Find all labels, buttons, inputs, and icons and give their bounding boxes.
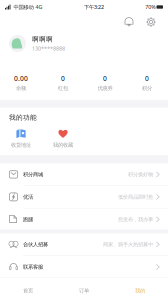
button[interactable]: 通知: [124, 17, 134, 27]
staticText: 我的收藏: [53, 142, 73, 148]
button[interactable]: 优活: [0, 186, 168, 208]
staticText: 积分换好物: [128, 171, 153, 178]
staticText: 首页: [23, 287, 33, 294]
staticText: 跑腿: [23, 216, 33, 223]
staticText: 商家、骑手火热招募中: [103, 241, 153, 248]
staticText: 130****8888: [32, 45, 65, 52]
staticText: 0: [145, 74, 149, 83]
staticText: 订单: [79, 287, 89, 294]
staticText: 我的: [135, 287, 145, 294]
staticText: 红包: [58, 85, 68, 91]
button[interactable]: 我的: [112, 277, 168, 300]
button[interactable]: 头像: [9, 35, 26, 52]
staticText: 下午3:22: [84, 3, 104, 11]
button[interactable]: 跑腿: [0, 208, 168, 230]
button[interactable]: 首页: [0, 277, 56, 300]
staticText: 合伙人招募: [23, 241, 48, 248]
staticText: 啊啊啊: [32, 35, 53, 43]
staticText: 您发布，我办事: [118, 216, 153, 223]
button[interactable]: 收货地址: [0, 129, 42, 148]
staticText: 70%: [145, 3, 155, 11]
button[interactable]: 订单: [56, 277, 112, 300]
button[interactable]: 0.00: [0, 74, 42, 91]
button[interactable]: 0: [126, 74, 168, 91]
button[interactable]: 合伙人招募: [0, 233, 168, 255]
staticText: 优惠券: [97, 85, 112, 91]
button[interactable]: 我的收藏: [42, 129, 84, 148]
button[interactable]: 0: [42, 74, 84, 91]
staticText: 积分: [142, 85, 152, 91]
staticText: 0: [61, 74, 65, 83]
staticText: 0.00: [14, 74, 28, 83]
staticText: 低价商品限时抢: [118, 194, 153, 200]
staticText: 积分商城: [23, 171, 43, 178]
staticText: 收货地址: [11, 142, 31, 148]
staticText: 优活: [23, 194, 33, 200]
button[interactable]: 联系客服: [0, 256, 168, 278]
button[interactable]: 0: [84, 74, 126, 91]
button[interactable]: 积分商城: [0, 163, 168, 185]
staticText: 联系客服: [23, 264, 43, 270]
button[interactable]: 设置: [146, 17, 156, 27]
staticText: 余额: [16, 85, 26, 91]
staticText: 我的功能: [9, 113, 37, 122]
staticText: 0: [103, 74, 107, 83]
staticText: 中国移动 4G: [11, 3, 42, 11]
